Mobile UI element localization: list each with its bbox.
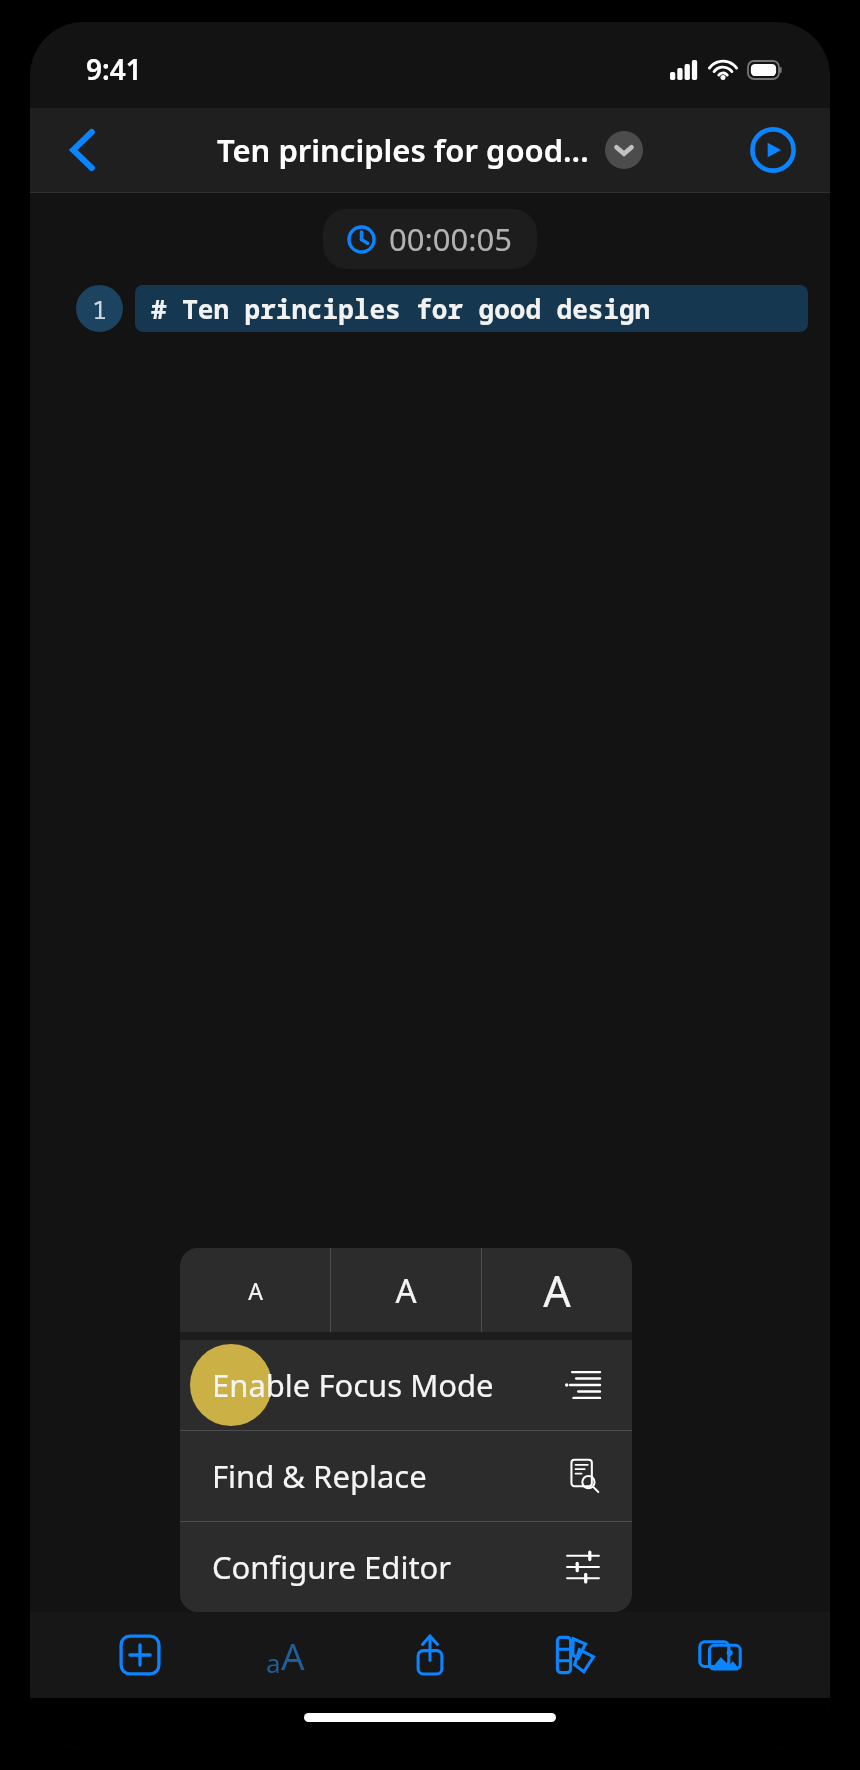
button[interactable]: Enable Focus Mode <box>180 1340 632 1430</box>
button[interactable]: New <box>105 1620 175 1690</box>
staticText: A <box>281 1630 305 1680</box>
staticText: 9:41 <box>86 50 142 88</box>
staticText: Find & Replace <box>212 1455 566 1497</box>
staticText: A <box>248 1275 263 1306</box>
staticText: a <box>266 1645 281 1680</box>
button[interactable]: Share <box>395 1620 465 1690</box>
button[interactable]: Back <box>54 121 112 179</box>
button[interactable]: Themes <box>540 1620 610 1690</box>
button[interactable]: Run <box>744 121 802 179</box>
staticText: Ten principles for good... <box>217 129 589 171</box>
button[interactable]: Find & Replace <box>180 1431 632 1521</box>
button[interactable]: Configure Editor <box>180 1522 632 1612</box>
staticText: A <box>395 1268 417 1313</box>
staticText: 1 <box>92 292 108 326</box>
staticText: 00:00:05 <box>389 218 513 260</box>
staticText: A <box>543 1261 571 1320</box>
staticText: # Ten principles for good design <box>151 291 651 326</box>
button[interactable]: A <box>482 1248 632 1332</box>
button[interactable]: Document options <box>605 131 643 169</box>
button[interactable]: A <box>180 1248 330 1332</box>
button[interactable]: Photos <box>685 1620 755 1690</box>
button[interactable]: # Ten principles for good design <box>135 285 808 332</box>
staticText: Enable Focus Mode <box>212 1364 566 1406</box>
button[interactable]: 00:00:05 <box>323 209 537 269</box>
staticText: Configure Editor <box>212 1546 566 1588</box>
button[interactable]: Text size <box>250 1620 320 1690</box>
button[interactable]: A <box>331 1248 481 1332</box>
